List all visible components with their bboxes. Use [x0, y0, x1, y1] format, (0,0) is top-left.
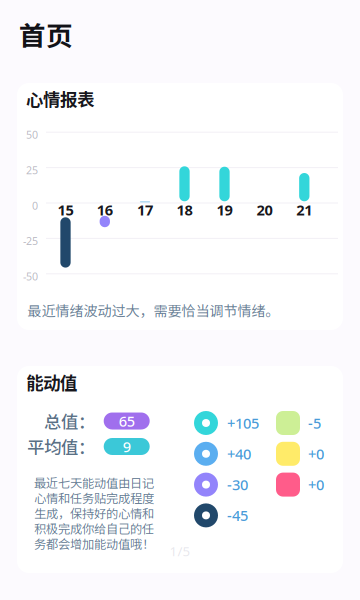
- staticText: -5: [308, 413, 321, 433]
- staticText: 心情报表: [26, 86, 94, 111]
- staticText: 最近情绪波动过大，需要恰当调节情绪。: [28, 300, 280, 320]
- staticText: 50: [26, 128, 38, 142]
- staticText: 25: [26, 163, 38, 177]
- staticText: 9: [123, 437, 131, 456]
- staticText: 20: [256, 200, 272, 220]
- staticText: 总值：: [44, 408, 95, 434]
- staticText: -50: [23, 269, 38, 283]
- staticText: 18: [176, 200, 192, 220]
- staticText: 21: [296, 200, 312, 220]
- staticText: 能动值: [26, 369, 77, 395]
- staticText: 最近七天能动值由日记心情和任务贴完成程度生成，保持好的心情和积极完成你给自己的任…: [34, 474, 154, 552]
- staticText: 首页: [19, 15, 73, 53]
- staticText: 1/5: [169, 542, 190, 560]
- staticText: +40: [227, 444, 251, 464]
- staticText: 16: [97, 200, 113, 220]
- staticText: 17: [137, 200, 153, 220]
- staticText: -25: [23, 234, 38, 248]
- staticText: 19: [216, 200, 232, 220]
- staticText: +105: [227, 413, 259, 433]
- staticText: 平均值：: [27, 434, 95, 459]
- staticText: +0: [308, 444, 324, 464]
- staticText: 15: [57, 200, 73, 220]
- staticText: 0: [32, 198, 38, 213]
- staticText: -30: [227, 475, 248, 494]
- staticText: 65: [119, 411, 135, 431]
- staticText: +0: [308, 475, 324, 494]
- staticText: -45: [227, 506, 248, 525]
